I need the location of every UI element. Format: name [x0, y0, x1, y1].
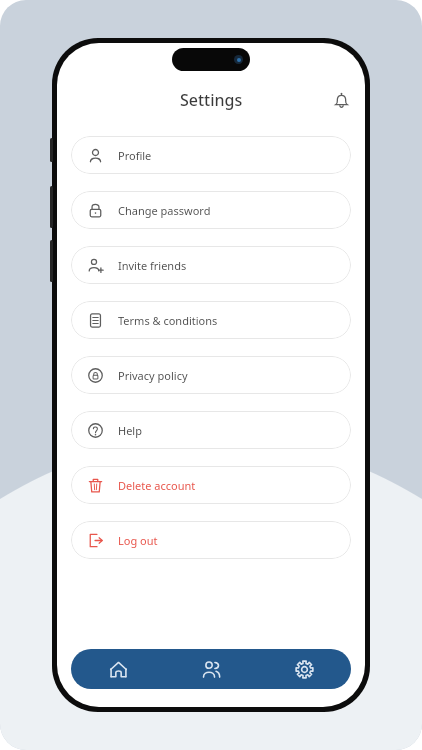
staticText: Profile — [118, 148, 152, 163]
staticText: Invite friends — [118, 258, 187, 273]
button[interactable]: Log out — [71, 521, 351, 559]
staticText: Log out — [118, 533, 158, 548]
staticText: Privacy policy — [118, 368, 188, 383]
staticText: Change password — [118, 203, 211, 218]
button[interactable]: Privacy policy — [71, 356, 351, 394]
staticText: Delete account — [118, 478, 196, 493]
button[interactable]: Friends — [165, 649, 258, 689]
staticText: Settings — [180, 89, 243, 111]
button[interactable]: Home — [71, 649, 165, 689]
button[interactable]: Notifications — [326, 85, 356, 115]
button[interactable]: Settings — [258, 649, 351, 689]
button[interactable]: Invite friends — [71, 246, 351, 284]
staticText: Help — [118, 423, 142, 438]
button[interactable]: Delete account — [71, 466, 351, 504]
button[interactable]: Change password — [71, 191, 351, 229]
button[interactable]: Profile — [71, 136, 351, 174]
staticText: Terms & conditions — [118, 313, 218, 328]
button[interactable]: Help — [71, 411, 351, 449]
button[interactable]: Terms & conditions — [71, 301, 351, 339]
